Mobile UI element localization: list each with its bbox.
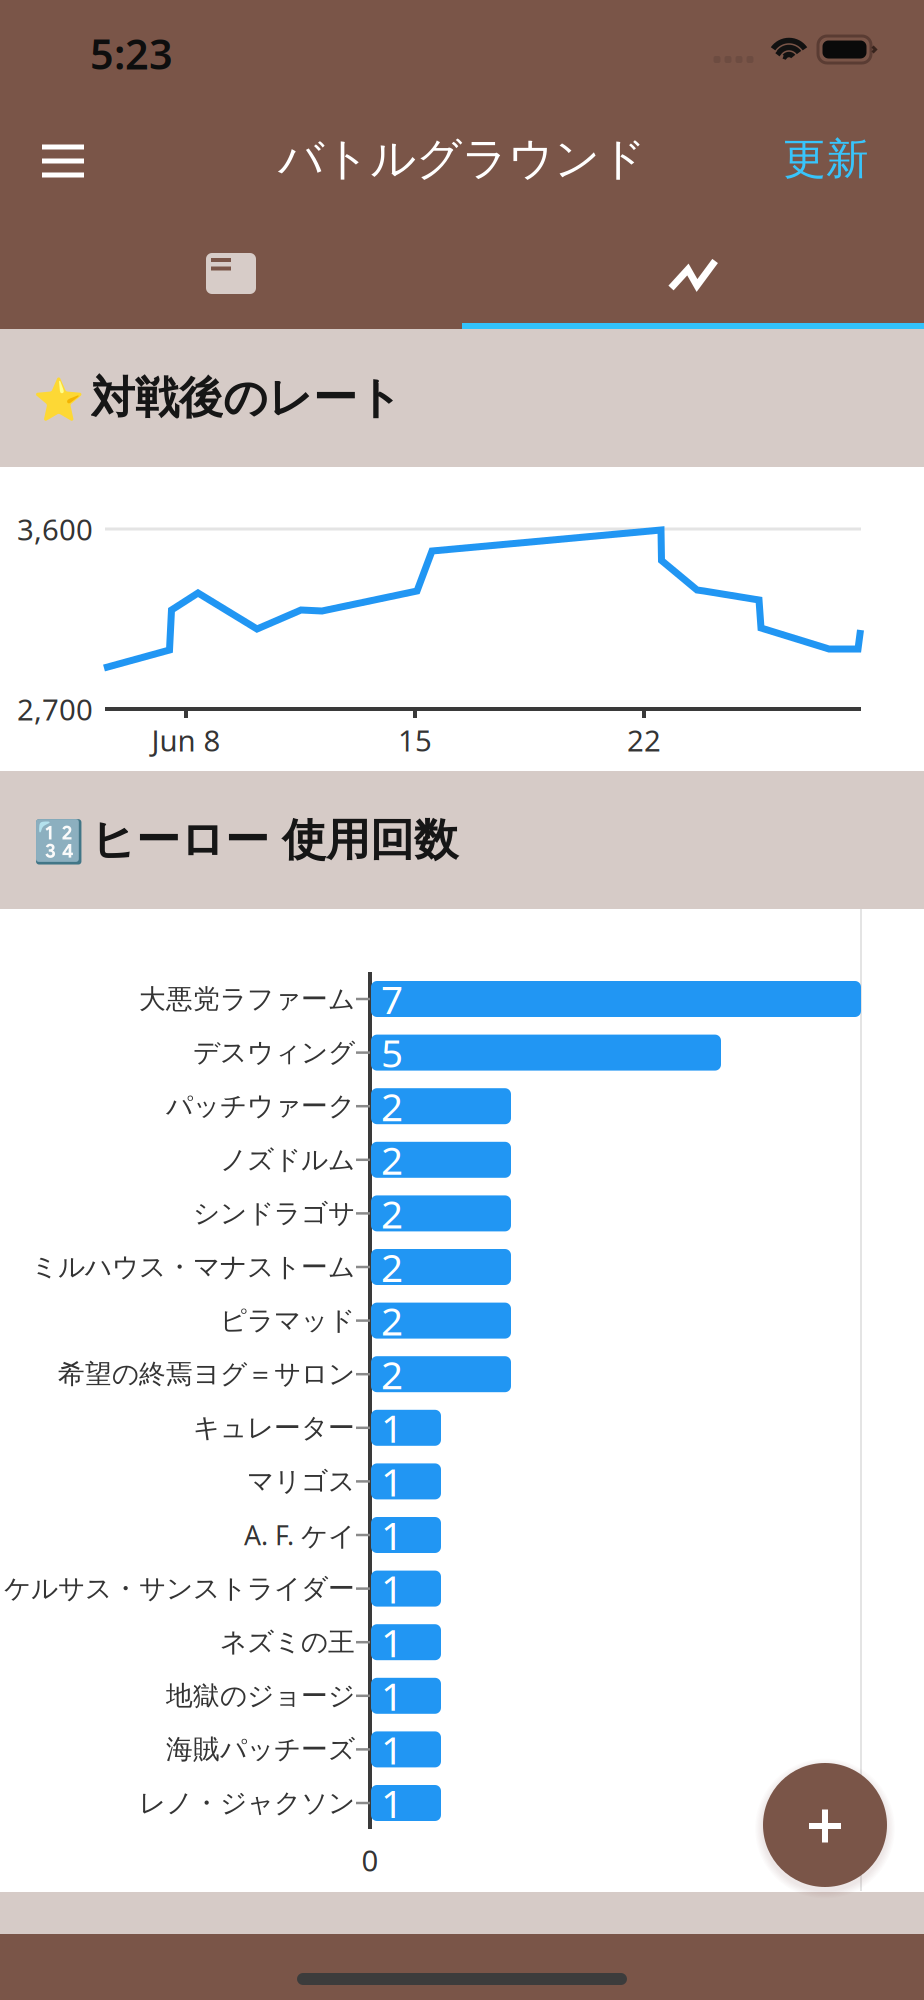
staticText: 7 [381,973,403,1025]
staticText: Jun 8 [151,720,220,759]
staticText: 1 [381,1777,403,1829]
staticText: ノズドルム [220,1143,355,1176]
staticText: ヒーロー 使用回数 [91,813,458,867]
staticText: 15 [398,720,432,759]
staticText: 22 [627,720,661,759]
staticText: 2 [381,1348,403,1400]
staticText: 2,700 [17,689,93,728]
staticText: キュレーター [193,1411,355,1444]
staticText: 2 [381,1295,403,1346]
staticText: 1 [381,1616,403,1668]
staticText: 2 [381,1134,403,1185]
staticText: 希望の終焉ヨグ＝サロン [58,1358,355,1391]
staticText: マリゴス [247,1465,355,1498]
staticText: 1 [381,1670,403,1721]
staticText: 3,600 [17,509,93,548]
button[interactable]: Menu [11,112,115,210]
staticText: レノ・ジャクソン [139,1787,355,1819]
staticText: 0 [361,1840,378,1879]
staticText: ピラマッド [220,1304,355,1337]
staticText: パッチウァーク [166,1090,355,1123]
staticText: 地獄のジョージ [166,1679,355,1712]
staticText: 更新 [783,133,869,185]
button[interactable]: Add [763,1763,887,1887]
staticText: シンドラゴサ [193,1197,355,1230]
staticText: 🔢 [32,818,83,866]
button[interactable]: Stats [462,220,924,323]
staticText: 海賊パッチーズ [166,1733,355,1766]
staticText: 1 [381,1724,403,1775]
staticText: 2 [381,1241,403,1293]
button[interactable]: 更新 [756,110,896,208]
staticText: バトルグラウンド [278,131,646,187]
staticText: 1 [381,1509,403,1561]
staticText: ネズミの王 [220,1626,355,1659]
staticText: 2 [381,1188,403,1239]
staticText: ミルハウス・マナストーム [31,1251,355,1283]
staticText: 5 [381,1027,403,1078]
staticText: 対戦後のレート [91,371,402,425]
staticText: ⭐️ [32,376,83,424]
staticText: ケルサス・サンストライダー [4,1572,355,1605]
staticText: 1 [381,1456,403,1507]
staticText: 1 [381,1402,403,1453]
staticText: 大悪党ラファーム [139,983,355,1015]
staticText: 5:23 [90,26,173,81]
staticText: 2 [381,1080,403,1132]
staticText: デスウィング [193,1036,355,1069]
staticText: A. F. ケイ [244,1517,355,1553]
button[interactable]: Matches [0,220,462,329]
staticText: 1 [381,1563,403,1614]
